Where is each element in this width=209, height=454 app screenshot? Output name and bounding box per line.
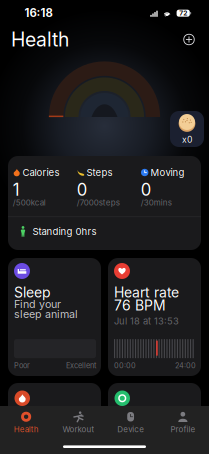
button[interactable]: Workout <box>52 406 104 438</box>
staticText: Health <box>14 424 39 434</box>
button[interactable]: Sleep <box>8 258 101 376</box>
staticText: Poor <box>14 361 30 370</box>
staticText: 72 <box>179 9 187 17</box>
staticText: 16:18 <box>24 6 52 20</box>
staticText: Steps <box>87 167 113 178</box>
staticText: /7000steps <box>77 198 120 207</box>
staticText: Standing 0hrs <box>32 226 96 237</box>
button[interactable]: Heart rate <box>108 258 201 376</box>
staticText: Find your <box>14 297 61 310</box>
button[interactable]: Profile <box>157 406 209 438</box>
staticText: Sleep <box>14 284 51 301</box>
staticText: 00:00 <box>114 361 136 370</box>
button[interactable]: Mindfulness <box>108 383 201 423</box>
button[interactable]: Health <box>0 406 52 438</box>
staticText: x0 <box>182 134 192 145</box>
staticText: Heart rate <box>114 284 179 301</box>
staticText: Excellent <box>66 361 96 370</box>
staticText: 1 <box>13 179 20 200</box>
staticText: Profile <box>170 424 195 434</box>
staticText: Jul 18 at 13:53 <box>114 315 179 327</box>
staticText: Moving <box>151 167 185 178</box>
staticText: 0 <box>141 179 152 200</box>
staticText: Health <box>11 28 69 51</box>
button[interactable]: Add data <box>178 28 200 50</box>
staticText: 76 BPM <box>114 297 166 314</box>
staticText: Device <box>117 424 144 434</box>
button[interactable]: Activity <box>8 383 101 423</box>
staticText: Workout <box>62 424 94 434</box>
button[interactable]: Device <box>104 406 157 438</box>
staticText: sleep animal <box>14 307 78 320</box>
staticText: /500kcal <box>13 198 46 207</box>
staticText: Calories <box>23 167 60 178</box>
staticText: 0 <box>77 179 88 200</box>
staticText: /30mins <box>141 198 172 207</box>
staticText: 24:00 <box>175 361 196 370</box>
